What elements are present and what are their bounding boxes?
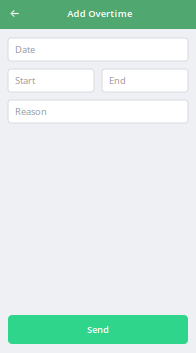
staticText: End <box>109 74 126 87</box>
button[interactable]: Date <box>8 38 188 61</box>
button[interactable]: Back <box>4 3 26 25</box>
button[interactable]: Reason <box>8 100 188 123</box>
staticText: Add Overtime <box>67 7 132 20</box>
staticText: Start <box>15 74 35 87</box>
staticText: Reason <box>15 105 47 118</box>
button[interactable]: Start <box>8 69 94 92</box>
button[interactable]: Send <box>8 315 188 344</box>
staticText: Send <box>87 323 109 336</box>
button[interactable]: End <box>102 69 188 92</box>
staticText: Date <box>15 43 35 56</box>
